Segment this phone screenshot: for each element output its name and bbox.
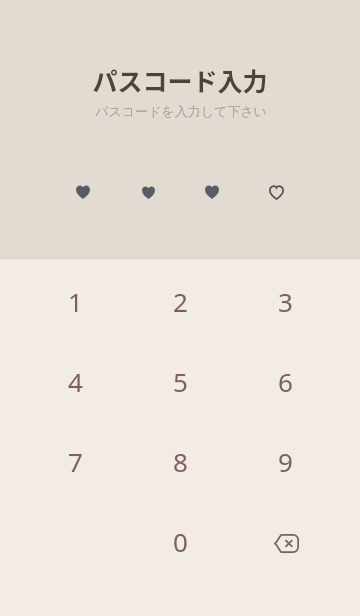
button[interactable]: 1 bbox=[23, 261, 128, 341]
staticText: 4 bbox=[68, 364, 83, 399]
staticText: 2 bbox=[173, 284, 188, 319]
staticText: パスコードを入力して下さい bbox=[95, 103, 267, 119]
staticText: 7 bbox=[68, 444, 83, 479]
button[interactable]: 7 bbox=[23, 421, 128, 501]
staticText: 3 bbox=[278, 284, 293, 319]
button[interactable]: 6 bbox=[233, 341, 338, 421]
button[interactable]: 3 bbox=[233, 261, 338, 341]
button[interactable]: 8 bbox=[128, 421, 233, 501]
button[interactable]: 4 bbox=[23, 341, 128, 421]
button[interactable]: 9 bbox=[233, 421, 338, 501]
staticText: パスコード入力 bbox=[92, 62, 268, 98]
staticText: 9 bbox=[278, 444, 293, 479]
button[interactable]: 2 bbox=[128, 261, 233, 341]
staticText: 5 bbox=[173, 364, 188, 399]
staticText: 6 bbox=[278, 364, 293, 399]
button[interactable]: 5 bbox=[128, 341, 233, 421]
staticText: 1 bbox=[68, 284, 83, 319]
staticText: 0 bbox=[173, 524, 188, 559]
button[interactable]: Delete bbox=[233, 501, 338, 581]
staticText: 8 bbox=[173, 444, 188, 479]
button[interactable]: 0 bbox=[128, 501, 233, 581]
